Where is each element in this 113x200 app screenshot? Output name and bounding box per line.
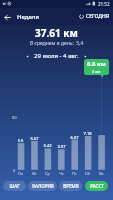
staticText: Пн (14, 171, 27, 176)
staticText: 6.6 км (87, 60, 106, 68)
staticText: 3.42 (41, 143, 54, 148)
staticText: ШАГ (9, 183, 20, 189)
staticText: 29 июля - 4 авг. (34, 52, 79, 60)
button[interactable]: Next week (82, 53, 89, 60)
staticText: 0 (13, 168, 16, 173)
button[interactable]: КАЛОРИЯ (28, 181, 57, 191)
staticText: Чт (55, 171, 68, 176)
staticText: Неделя (17, 13, 39, 21)
button[interactable]: Today (76, 9, 113, 24)
button[interactable]: ВРЕМЯ (59, 181, 82, 191)
staticText: 3.57 (55, 144, 68, 149)
staticText: 21:52 (98, 1, 110, 7)
other: Back (4, 14, 11, 21)
staticText: 37.61 км (35, 26, 78, 40)
button[interactable]: Previous week (24, 53, 31, 60)
staticText: 5.67 (28, 136, 41, 141)
button[interactable]: ШАГ (3, 181, 26, 191)
staticText: 6.67 (68, 135, 81, 140)
staticText: 50 (12, 115, 17, 120)
staticText: 7.18 (81, 131, 94, 136)
staticText: В среднем в день: 5,4 (30, 40, 84, 47)
staticText: Ср (41, 171, 54, 176)
button[interactable]: РАССТ (85, 181, 108, 191)
staticText: 5.6 (14, 138, 27, 143)
button[interactable]: Back (0, 9, 43, 25)
staticText: Вс (95, 171, 108, 176)
staticText: СЕГОДНЯ (86, 13, 110, 20)
staticText: РАССТ (90, 183, 104, 189)
staticText: Пт (68, 171, 81, 176)
staticText: Сб (81, 171, 94, 176)
staticText: КАЛОРИЯ (32, 183, 54, 189)
staticText: ВРЕМЯ (63, 183, 79, 189)
staticText: 4 авг. (92, 69, 102, 74)
staticText: Вт (28, 171, 41, 176)
other: Today (79, 14, 84, 19)
button[interactable]: 6.6 км (84, 59, 109, 75)
